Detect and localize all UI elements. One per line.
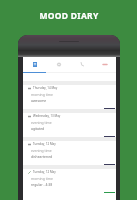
staticText: Thursday, 14 May [33, 86, 58, 90]
button[interactable]: Tuesday, 12 May [23, 165, 116, 193]
staticText: morning time [31, 176, 53, 181]
staticText: Tuesday, 12 May [33, 170, 56, 174]
staticText: evening time [31, 148, 52, 153]
staticText: evening time [31, 120, 52, 125]
button[interactable]: Favourites [93, 57, 116, 72]
staticText: awesome [31, 98, 47, 103]
button[interactable]: Tuesday, 12 May [23, 137, 116, 165]
button[interactable]: Thursday, 14 May [23, 81, 116, 109]
staticText: morning time [31, 92, 53, 97]
button[interactable]: Call [70, 57, 93, 72]
staticText: regular - 4:38 [31, 182, 53, 187]
staticText: MOOD DIARY [39, 10, 99, 22]
button[interactable]: Wednesday, 13 May [23, 109, 116, 137]
staticText: agitated [31, 126, 45, 131]
staticText: disheartened [31, 154, 53, 159]
button[interactable]: Settings [47, 57, 70, 72]
staticText: Tuesday, 12 May [33, 142, 56, 146]
button[interactable]: Diary [23, 57, 47, 72]
staticText: Wednesday, 13 May [33, 114, 61, 118]
